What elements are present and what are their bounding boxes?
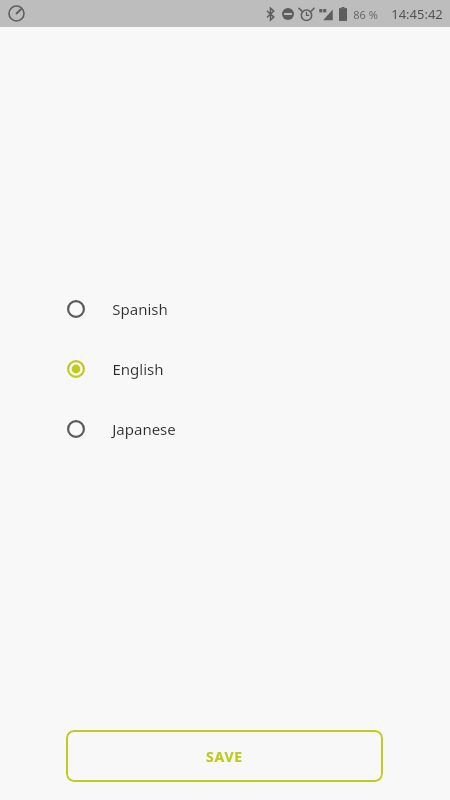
button[interactable]: SAVE bbox=[66, 730, 383, 782]
button[interactable]: Japanese bbox=[0, 399, 450, 459]
staticText: SAVE bbox=[206, 747, 243, 766]
staticText: Spanish bbox=[112, 299, 168, 319]
staticText: English bbox=[112, 359, 164, 379]
button[interactable]: English bbox=[0, 339, 450, 399]
button[interactable]: Spanish bbox=[0, 279, 450, 339]
staticText: 14:45:42 bbox=[391, 5, 443, 23]
staticText: 86 % bbox=[353, 7, 378, 22]
staticText: Japanese bbox=[112, 419, 176, 439]
